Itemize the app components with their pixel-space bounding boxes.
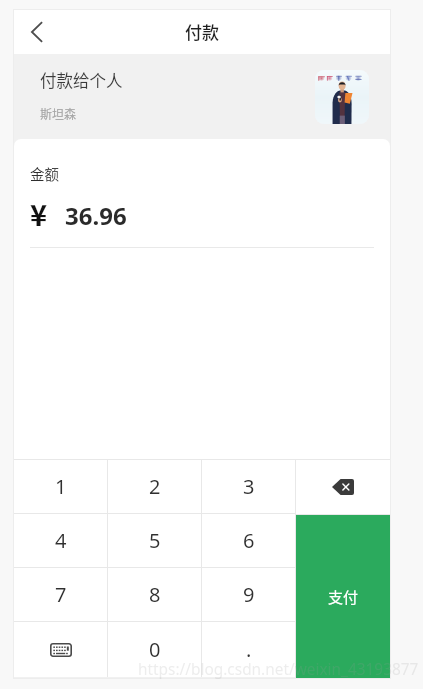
staticText: 5: [149, 527, 161, 554]
staticText: 9: [243, 581, 255, 608]
staticText: 7: [55, 581, 67, 608]
button[interactable]: 8: [108, 568, 201, 621]
staticText: 3: [243, 473, 255, 500]
button[interactable]: 6: [202, 514, 295, 567]
staticText: https://blog.csdn.net/weixin_43193877: [138, 659, 419, 680]
staticText: ¥: [30, 192, 48, 234]
staticText: 36.96: [65, 199, 127, 232]
staticText: .: [246, 636, 252, 663]
staticText: 1: [55, 473, 67, 500]
staticText: 2: [149, 473, 161, 500]
button[interactable]: 1: [14, 460, 107, 513]
staticText: 8: [149, 581, 161, 608]
staticText: 斯坦森: [40, 105, 77, 122]
button[interactable]: 4: [14, 514, 107, 567]
staticText: 6: [243, 527, 255, 554]
staticText: 4: [55, 527, 67, 554]
button[interactable]: 7: [14, 568, 107, 621]
button[interactable]: .: [202, 622, 295, 677]
staticText: 金额: [30, 163, 59, 184]
button[interactable]: Back: [14, 10, 60, 54]
button[interactable]: 3: [202, 460, 295, 513]
button[interactable]: 5: [108, 514, 201, 567]
button[interactable]: 支付: [296, 515, 390, 678]
button[interactable]: 2: [108, 460, 201, 513]
staticText: 0: [149, 636, 161, 663]
staticText: 支付: [328, 586, 359, 608]
staticText: 付款: [185, 19, 219, 44]
staticText: 付款给个人: [40, 68, 123, 92]
button[interactable]: 0: [108, 622, 201, 677]
button[interactable]: 9: [202, 568, 295, 621]
button[interactable]: Keyboard: [14, 622, 107, 677]
button[interactable]: Backspace: [296, 460, 390, 514]
